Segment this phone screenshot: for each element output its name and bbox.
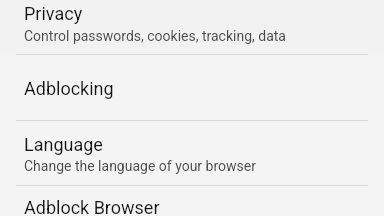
staticText: Language xyxy=(24,134,103,155)
staticText: Control passwords, cookies, tracking, da… xyxy=(24,28,286,44)
button[interactable]: Language xyxy=(0,120,384,185)
button[interactable]: Adblock Browser xyxy=(0,185,384,216)
staticText: Adblocking xyxy=(24,78,114,99)
staticText: Adblock Browser xyxy=(24,197,160,216)
button[interactable]: Adblocking xyxy=(0,55,384,120)
button[interactable]: Privacy xyxy=(0,0,384,55)
staticText: Change the language of your browser xyxy=(24,158,256,174)
staticText: Privacy xyxy=(24,3,83,24)
